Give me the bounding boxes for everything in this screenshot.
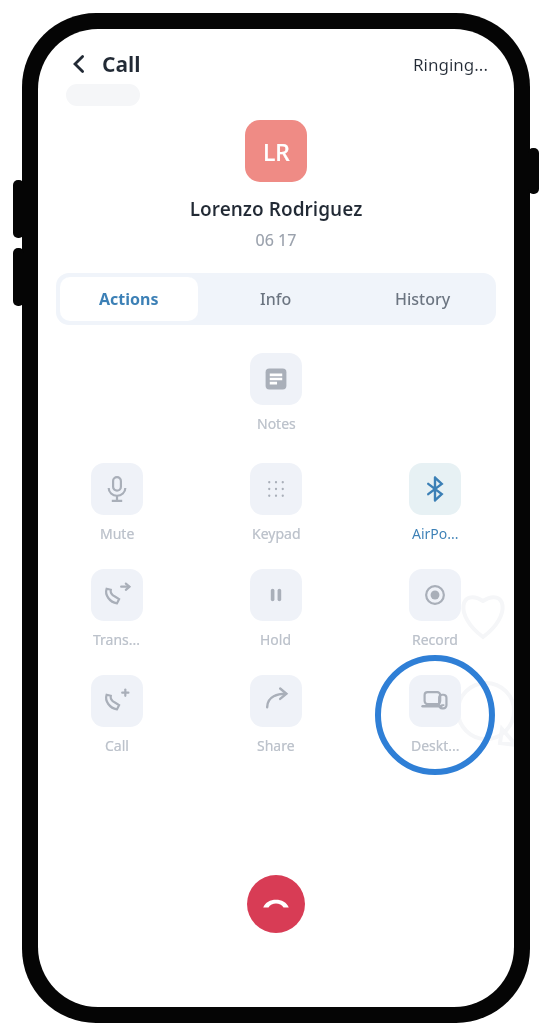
button[interactable]: Notes [248,351,304,435]
staticText: Keypad [252,524,301,543]
staticText: Call [102,50,141,79]
staticText: Trans... [93,630,141,649]
button[interactable]: Info [202,273,349,325]
staticText: 06 17 [38,229,514,251]
button[interactable]: Mute [89,461,145,545]
staticText: Notes [257,414,296,433]
button[interactable]: Trans... [89,567,145,651]
button[interactable]: End call [247,875,305,933]
staticText: Lorenzo Rodriguez [38,196,514,222]
staticText: Share [257,736,295,755]
button[interactable]: Hold [248,567,304,651]
staticText: Mute [100,524,135,543]
staticText: LR [263,136,290,167]
staticText: History [395,288,451,310]
button[interactable]: Keypad [248,461,304,545]
staticText: Actions [99,288,159,310]
button[interactable]: Call [89,673,145,757]
staticText: Deskt... [411,736,460,755]
button[interactable]: Actions [60,277,198,321]
button[interactable]: AirPo... [407,461,463,545]
button[interactable]: Deskt... [407,673,463,757]
staticText: Record [412,630,458,649]
button[interactable]: Record [407,567,463,651]
button[interactable]: History [349,273,496,325]
staticText: Info [260,288,292,310]
button[interactable]: Share [248,673,304,757]
staticText: AirPo... [412,524,459,543]
button[interactable]: Back [64,49,94,79]
button[interactable]: Ringing... [413,53,488,76]
staticText: Hold [260,630,292,649]
staticText: Call [105,736,129,755]
